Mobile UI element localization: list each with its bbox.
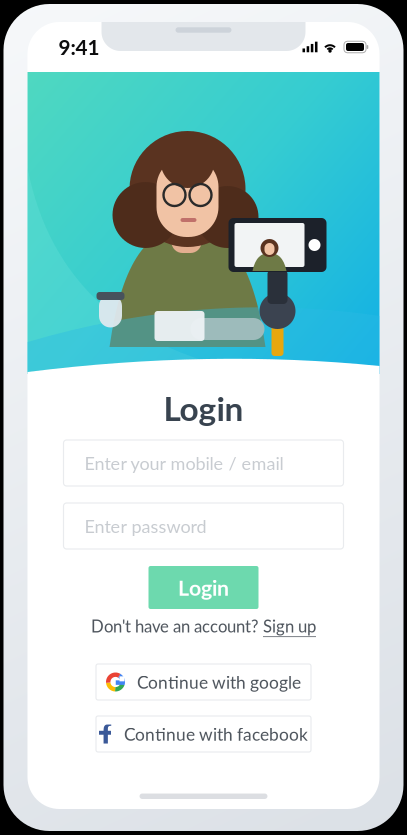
staticText: Continue with google bbox=[137, 672, 301, 692]
staticText: Enter your mobile / email bbox=[84, 452, 283, 474]
button[interactable]: Continue with facebook bbox=[96, 716, 311, 752]
staticText: Sign up bbox=[263, 616, 316, 636]
button[interactable]: Login bbox=[148, 566, 258, 609]
staticText: Continue with facebook bbox=[124, 724, 308, 744]
staticText: Don't have an account? bbox=[91, 616, 258, 636]
staticText: Login bbox=[163, 388, 243, 428]
button[interactable]: Sign up bbox=[263, 616, 316, 636]
staticText: Enter password bbox=[84, 515, 206, 537]
staticText: 9:41 bbox=[58, 35, 99, 59]
staticText: Login bbox=[178, 575, 229, 600]
button[interactable]: Continue with google bbox=[96, 664, 311, 700]
